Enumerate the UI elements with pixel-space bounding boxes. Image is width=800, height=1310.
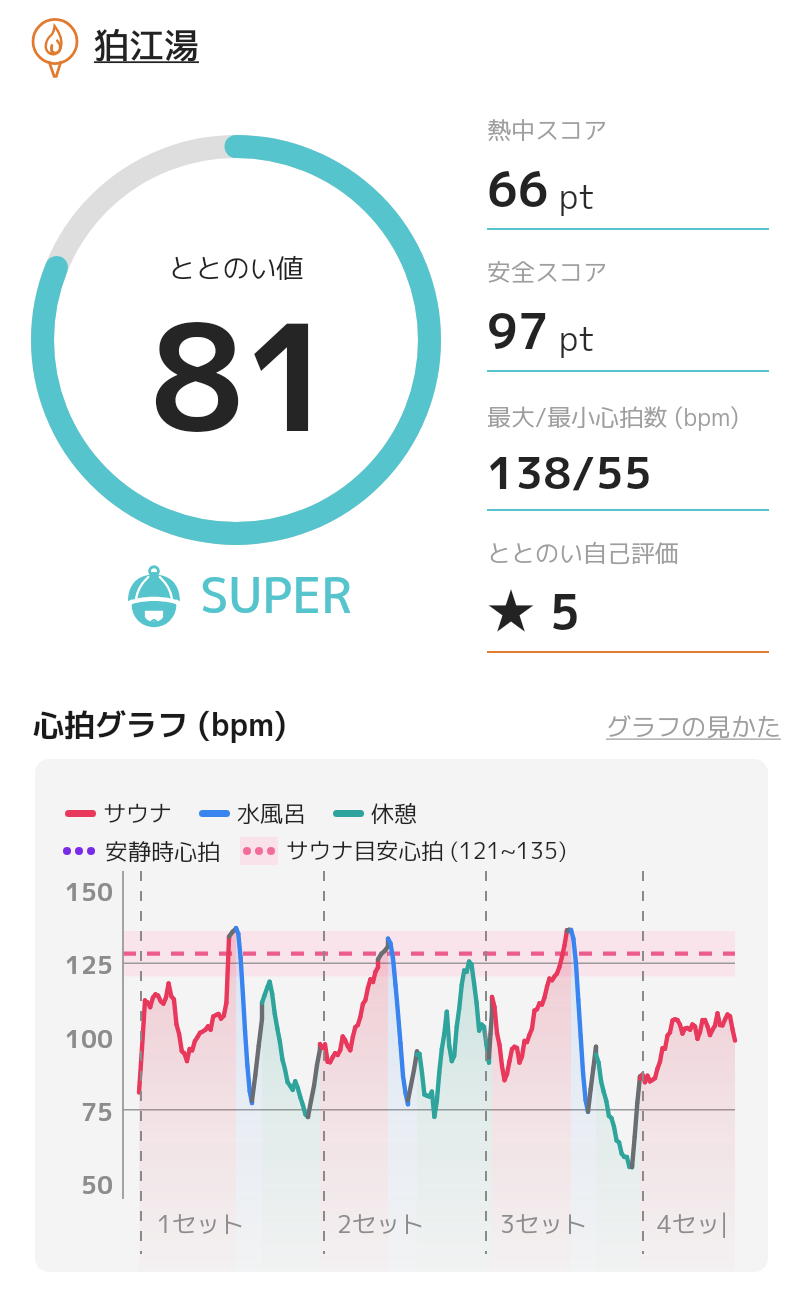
button[interactable]: 最大/最小心拍数 (bpm) [487, 400, 769, 511]
staticText: 150 [35, 874, 113, 909]
staticText: 4セッ| [657, 1207, 729, 1240]
button[interactable]: 安全スコア [487, 255, 769, 372]
staticText: pt [549, 314, 596, 361]
staticText: 心拍グラフ (bpm) [33, 703, 287, 746]
button[interactable]: 熱中スコア [487, 113, 769, 230]
staticText: 1セット [157, 1207, 244, 1240]
staticText: ととのい値 [36, 249, 436, 287]
staticText: 125 [35, 947, 113, 982]
staticText: 安全スコア [487, 255, 607, 288]
staticText: 66 [487, 155, 549, 222]
staticText: 熱中スコア [487, 113, 607, 146]
staticText: pt [549, 172, 596, 219]
staticText: 安静時心拍 [105, 835, 220, 867]
staticText: ととのい自己評価 [487, 536, 679, 569]
staticText: 97 [487, 297, 549, 364]
staticText: 81 [44, 273, 444, 478]
button[interactable]: グラフの見かた [606, 709, 782, 744]
staticText: 3セット [500, 1207, 587, 1240]
staticText: 75 [35, 1094, 113, 1129]
other: Sauna location [30, 18, 80, 76]
staticText: 最大/最小心拍数 (bpm) [487, 400, 740, 433]
staticText: SUPER [200, 560, 353, 628]
button[interactable]: ととのい自己評価 [487, 536, 769, 653]
staticText: 100 [35, 1021, 113, 1056]
staticText: ★ 5 [487, 578, 581, 645]
staticText: 50 [35, 1167, 113, 1202]
staticText: サウナ [103, 797, 172, 829]
button[interactable]: Sauna location [30, 18, 200, 76]
staticText: サウナ目安心拍 (121~135) [286, 835, 567, 866]
staticText: 2セット [337, 1207, 424, 1240]
staticText: 休憩 [371, 797, 417, 829]
staticText: 狛江湯 [94, 20, 200, 69]
staticText: 138/55 [487, 442, 652, 503]
staticText: 水風呂 [237, 797, 306, 829]
button[interactable]: SUPER [128, 560, 353, 630]
